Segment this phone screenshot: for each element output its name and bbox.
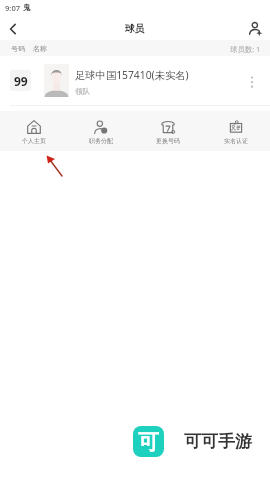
staticText: 个人主页: [22, 137, 46, 145]
button[interactable]: 个人主页: [0, 111, 67, 151]
staticText: 可: [138, 429, 159, 455]
staticText: 足球中国157410(未实名): [75, 68, 189, 82]
staticText: 领队: [75, 87, 91, 97]
staticText: 名称: [33, 44, 47, 53]
button[interactable]: More options: [241, 64, 263, 98]
button[interactable]: Back: [0, 18, 26, 40]
button[interactable]: Add player: [246, 18, 270, 40]
staticText: 鬼: [23, 3, 31, 13]
button[interactable]: 更换号码: [134, 111, 202, 151]
staticText: 可可手游: [184, 431, 252, 452]
staticText: 职务分配: [89, 137, 113, 145]
button[interactable]: 实名认证: [202, 111, 270, 151]
staticText: 更换号码: [156, 137, 180, 145]
button[interactable]: 职务分配: [67, 111, 134, 151]
staticText: 球员: [125, 23, 145, 35]
staticText: 实名认证: [224, 137, 248, 145]
staticText: 球员数: 1: [230, 44, 261, 54]
staticText: 号码: [11, 44, 25, 53]
staticText: 9:07: [5, 3, 21, 13]
button[interactable]: 99: [0, 56, 270, 105]
staticText: 99: [14, 73, 28, 89]
